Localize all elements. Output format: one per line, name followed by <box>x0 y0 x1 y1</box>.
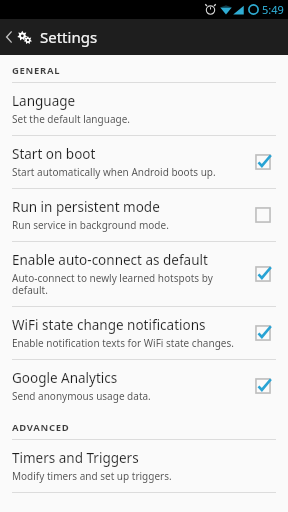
staticText: Language <box>12 92 76 110</box>
staticText: Modify timers and set up triggers. <box>12 469 172 483</box>
staticText: Start automatically when Android boots u… <box>12 165 216 179</box>
staticText: Send anonymous usage data. <box>12 389 151 403</box>
staticText: Google Analytics <box>12 369 118 387</box>
button[interactable]: Run in persistent mode <box>0 189 288 241</box>
staticText: Auto-connect to newly learned hotspots b… <box>12 271 240 297</box>
staticText: GENERAL <box>12 64 61 77</box>
button[interactable]: Checked <box>250 149 276 175</box>
button[interactable]: Start on boot <box>0 136 288 188</box>
button[interactable]: Unchecked <box>250 202 276 228</box>
staticText: Start on boot <box>12 145 96 163</box>
staticText: 5:49 <box>262 2 284 17</box>
staticText: Enable notification texts for WiFi state… <box>12 336 234 350</box>
button[interactable]: WiFi state change notifications <box>0 307 288 359</box>
staticText: ADVANCED <box>12 421 70 434</box>
staticText: Run service in background mode. <box>12 218 169 232</box>
button[interactable]: Settings <box>0 19 288 55</box>
staticText: Run in persistent mode <box>12 198 160 216</box>
staticText: Settings <box>40 27 98 47</box>
button[interactable]: Checked <box>250 320 276 346</box>
button[interactable]: Checked <box>250 261 276 287</box>
button[interactable]: Google Analytics <box>0 360 288 412</box>
button[interactable]: Checked <box>250 373 276 399</box>
staticText: Timers and Triggers <box>12 449 139 467</box>
button[interactable]: Language <box>0 83 288 135</box>
staticText: Enable auto-connect as default <box>12 251 208 269</box>
button[interactable]: Enable auto-connect as default <box>0 242 288 306</box>
button[interactable]: Timers and Triggers <box>0 440 288 492</box>
staticText: WiFi state change notifications <box>12 316 206 334</box>
staticText: Set the default language. <box>12 112 130 126</box>
